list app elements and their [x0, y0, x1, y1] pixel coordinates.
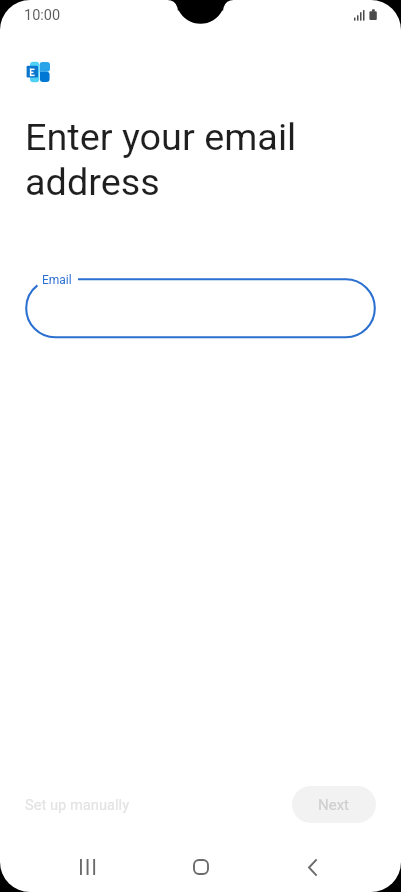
- staticText: 10:00: [24, 7, 61, 24]
- button[interactable]: Home: [178, 844, 224, 890]
- button[interactable]: Recent apps: [65, 844, 111, 890]
- button[interactable]: Set up manually: [17, 788, 138, 821]
- staticText: Set up manually: [25, 796, 130, 813]
- staticText: Next: [318, 796, 350, 814]
- staticText: Email: [42, 273, 72, 287]
- button[interactable]: Next: [292, 786, 376, 823]
- staticText: Enter your email address: [25, 115, 297, 204]
- button[interactable]: Back: [289, 844, 335, 890]
